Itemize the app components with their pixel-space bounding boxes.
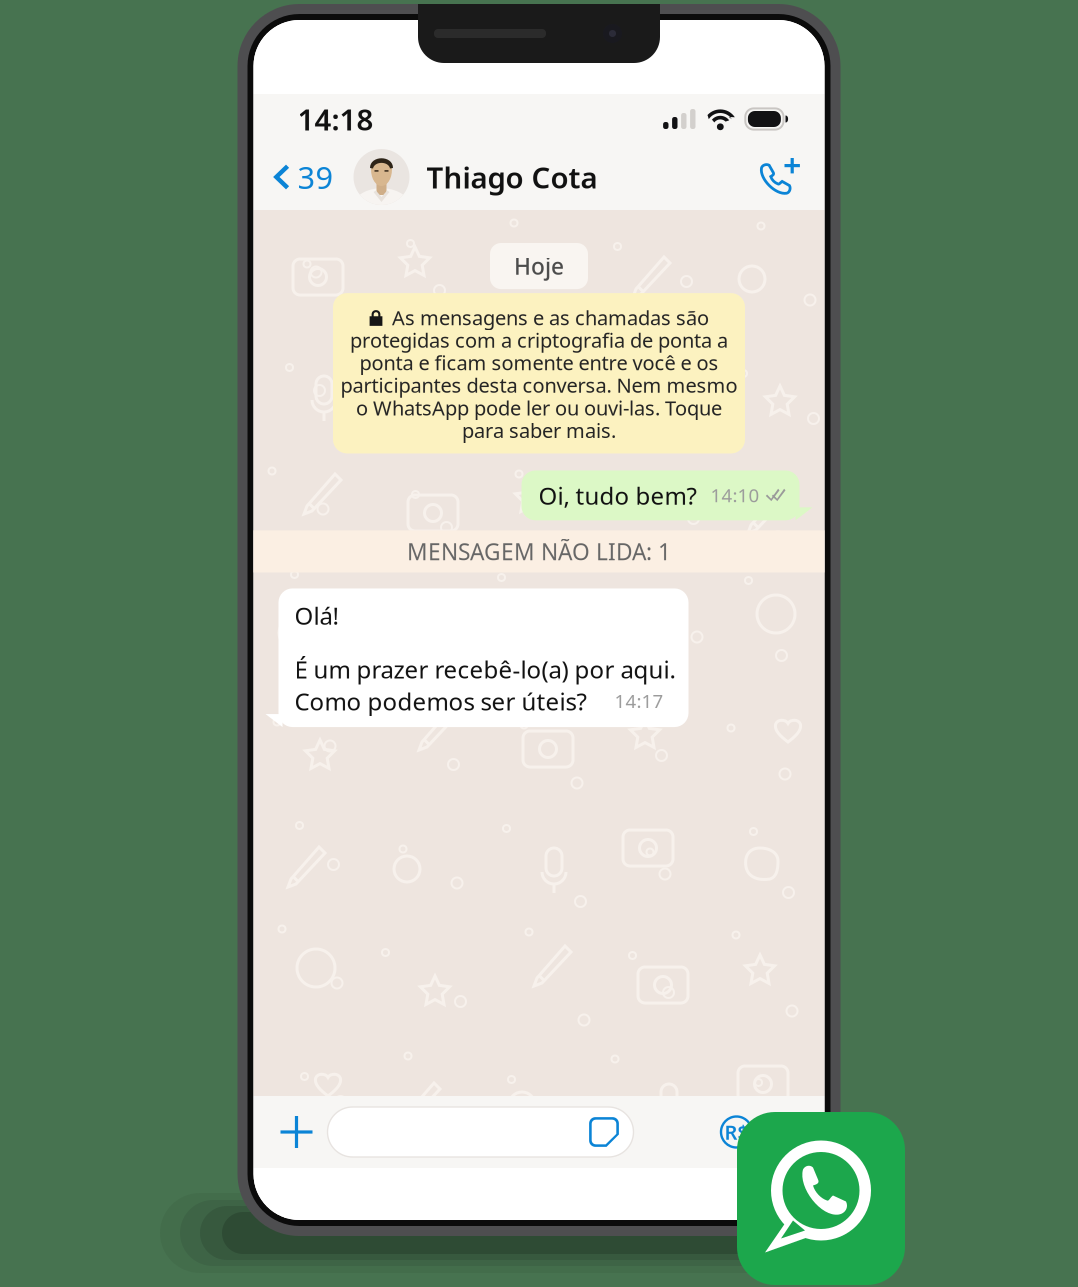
staticText: MENSAGEM NÃO LIDA: 1 (407, 536, 671, 566)
staticText: R$ (724, 1119, 748, 1145)
button[interactable]: 39 (253, 142, 341, 212)
staticText: ponta e ficam somente entre você e os (359, 349, 718, 376)
staticText: o WhatsApp pode ler ou ouvi-las. Toque (356, 394, 722, 421)
staticText: protegidas com a criptografia de ponta a (350, 327, 728, 353)
button[interactable]: Send payment (710, 1099, 762, 1165)
staticText: 39 (297, 157, 333, 197)
button[interactable]: Voice call (752, 142, 824, 212)
staticText: Olá! (294, 599, 338, 631)
staticText: Hoje (514, 251, 564, 281)
staticText: participantes desta conversa. Nem mesmo (340, 372, 737, 398)
button[interactable]: Camera (762, 1099, 814, 1165)
staticText: Thiago Cota (426, 157, 597, 196)
staticText: 14:17 (614, 688, 663, 713)
staticText: para saber mais. (462, 417, 616, 443)
staticText: 14:10 (710, 482, 759, 507)
staticText: As mensagens e as chamadas são (392, 304, 709, 331)
staticText: Como podemos ser úteis? (294, 685, 586, 717)
staticText: 14:18 (297, 99, 373, 138)
button[interactable]: Attach (265, 1099, 327, 1165)
staticText: Oi, tudo bem? (538, 479, 696, 511)
staticText: É um prazer recebê-lo(a) por aqui. (294, 653, 675, 685)
